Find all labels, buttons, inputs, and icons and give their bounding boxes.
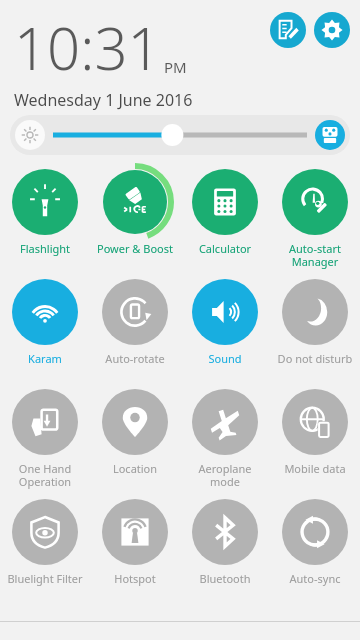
button[interactable]: Settings xyxy=(314,12,350,48)
staticText: Auto-start Manager xyxy=(270,241,360,269)
staticText: Hotspot xyxy=(90,571,180,586)
staticText: Location xyxy=(90,461,180,476)
button[interactable]: Auto-start Manager xyxy=(270,161,360,271)
button[interactable]: One Hand Operation xyxy=(0,381,90,491)
button[interactable]: Power & Boost xyxy=(90,161,180,271)
staticText: 10:31 xyxy=(14,8,161,87)
button[interactable]: Karam xyxy=(0,271,90,381)
button[interactable]: Location xyxy=(90,381,180,491)
button[interactable]: Bluetooth xyxy=(180,491,270,601)
button[interactable]: Auto brightness xyxy=(315,120,345,150)
button[interactable]: Brightness xyxy=(10,115,350,155)
staticText: Wednesday 1 June 2016 xyxy=(14,89,193,111)
staticText: Calculator xyxy=(180,241,270,256)
staticText: PM xyxy=(164,57,187,77)
staticText: Auto-sync xyxy=(270,571,360,586)
button[interactable]: Do not disturb xyxy=(270,271,360,381)
staticText: Bluelight Filter xyxy=(0,571,90,586)
button[interactable]: Flashlight xyxy=(0,161,90,271)
staticText: Mobile data xyxy=(270,461,360,476)
staticText: One Hand Operation xyxy=(0,461,90,489)
button[interactable]: Auto-sync xyxy=(270,491,360,601)
staticText: Bluetooth xyxy=(180,571,270,586)
staticText: Sound xyxy=(180,351,270,366)
staticText: Aeroplane mode xyxy=(180,461,270,489)
staticText: Power & Boost xyxy=(90,241,180,256)
staticText: Do not disturb xyxy=(270,351,360,366)
button[interactable]: Hotspot xyxy=(90,491,180,601)
button[interactable]: Bluelight Filter xyxy=(0,491,90,601)
button[interactable]: Calculator xyxy=(180,161,270,271)
staticText: Auto-rotate xyxy=(90,351,180,366)
staticText: Flashlight xyxy=(0,241,90,256)
button[interactable]: Sound xyxy=(180,271,270,381)
button[interactable]: Aeroplane mode xyxy=(180,381,270,491)
button[interactable]: Mobile data xyxy=(270,381,360,491)
staticText: Karam xyxy=(0,351,90,366)
button[interactable]: Edit quick settings xyxy=(270,12,306,48)
button[interactable]: Auto-rotate xyxy=(90,271,180,381)
